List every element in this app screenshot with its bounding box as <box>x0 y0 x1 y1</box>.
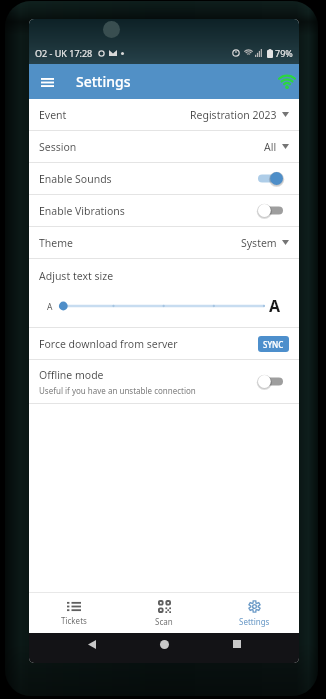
button[interactable]: Settings <box>209 593 299 633</box>
button[interactable]: Connection status <box>275 70 299 94</box>
button[interactable]: Event <box>29 99 299 130</box>
staticText: Enable Sounds <box>39 172 112 186</box>
button[interactable]: Force download from server <box>29 328 299 359</box>
staticText: System <box>241 236 277 250</box>
staticText: 79% <box>275 47 293 59</box>
button[interactable]: Recent apps <box>227 634 247 654</box>
staticText: Enable Vibrations <box>39 204 125 218</box>
staticText: SYNC <box>263 339 284 350</box>
staticText: Offline mode <box>39 368 104 382</box>
button[interactable]: Offline mode <box>29 360 299 403</box>
staticText: Adjust text size <box>39 269 114 283</box>
staticText: All <box>264 140 277 154</box>
staticText: Tickets <box>61 615 87 626</box>
staticText: Settings <box>76 72 131 91</box>
button[interactable]: Enable Vibrations <box>29 195 299 226</box>
button[interactable]: Scan <box>119 593 209 633</box>
staticText: Settings <box>239 616 270 627</box>
staticText: Scan <box>155 616 173 627</box>
staticText: A <box>47 301 53 313</box>
button[interactable]: Tickets <box>29 593 119 633</box>
staticText: Force download from server <box>39 337 178 351</box>
button[interactable]: Home <box>154 634 174 654</box>
staticText: Session <box>39 140 77 154</box>
staticText: O2 - UK 17:28 <box>35 47 93 59</box>
button[interactable]: Session <box>29 131 299 162</box>
button[interactable]: SYNC <box>258 336 289 352</box>
button[interactable]: Adjust text size <box>29 259 299 327</box>
staticText: Useful if you have an unstable connectio… <box>39 385 196 396</box>
button[interactable]: Back <box>82 634 102 654</box>
button[interactable]: Enable Sounds <box>29 163 299 194</box>
button[interactable]: Open navigation menu <box>34 69 60 95</box>
staticText: Event <box>39 108 67 122</box>
button[interactable]: Theme <box>29 227 299 258</box>
staticText: A <box>269 295 281 317</box>
staticText: Registration 2023 <box>190 108 277 122</box>
staticText: Theme <box>39 236 73 250</box>
